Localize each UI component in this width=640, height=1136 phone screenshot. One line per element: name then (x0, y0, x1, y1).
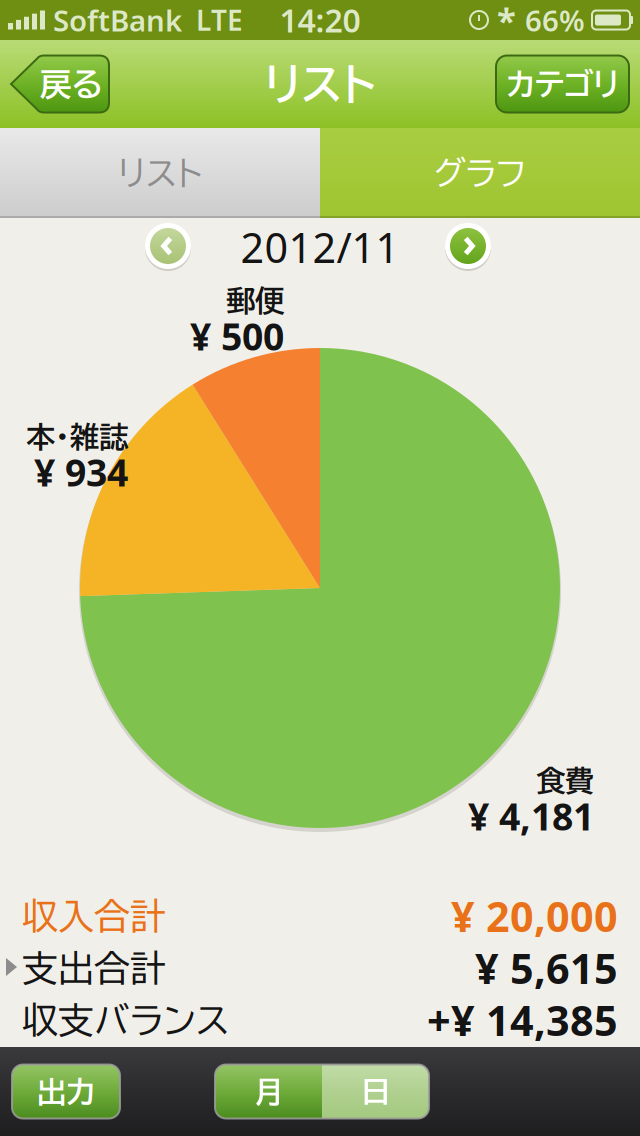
staticText: 本・雑誌 (26, 422, 128, 451)
staticText: カテゴリ (506, 69, 619, 99)
staticText: グラフ (433, 156, 526, 190)
button[interactable]: グラフ (320, 128, 640, 218)
staticText: 食費 (536, 766, 594, 795)
staticText: SoftBank (45, 0, 182, 39)
staticText: * (497, 0, 516, 43)
staticText: 収支バランス (22, 1002, 229, 1038)
staticText: ¥ 5,615 (475, 941, 618, 995)
staticText: 戻る (39, 68, 102, 100)
staticText: 出力 (37, 1077, 95, 1106)
staticText: ¥ 500 (190, 311, 284, 361)
staticText: ¥ 20,000 (451, 889, 618, 943)
staticText: 2012/11 (240, 220, 399, 274)
staticText: 日 (361, 1077, 390, 1106)
staticText: 郵便 (226, 286, 284, 315)
staticText: ¥ 934 (34, 447, 128, 497)
staticText: 収入合計 (22, 898, 166, 934)
staticText: リスト (264, 63, 375, 105)
staticText: 66% (525, 0, 585, 39)
staticText: LTE (182, 1, 243, 39)
button[interactable]: 出力 (12, 1064, 120, 1118)
button[interactable]: リスト (0, 128, 320, 218)
button[interactable]: Previous month (145, 223, 191, 269)
staticText: 月 (254, 1077, 283, 1106)
button[interactable]: カテゴリ (496, 55, 629, 112)
staticText: 14:20 (279, 0, 360, 41)
button[interactable]: 月 (215, 1064, 322, 1118)
button[interactable]: Next month (445, 223, 491, 269)
button[interactable]: 日 (322, 1064, 429, 1118)
staticText: ¥ 4,181 (468, 791, 594, 841)
staticText: +¥ 14,385 (427, 993, 618, 1047)
staticText: リスト (118, 156, 202, 190)
staticText: 支出合計 (22, 950, 166, 986)
button[interactable]: 戻る (11, 55, 109, 112)
